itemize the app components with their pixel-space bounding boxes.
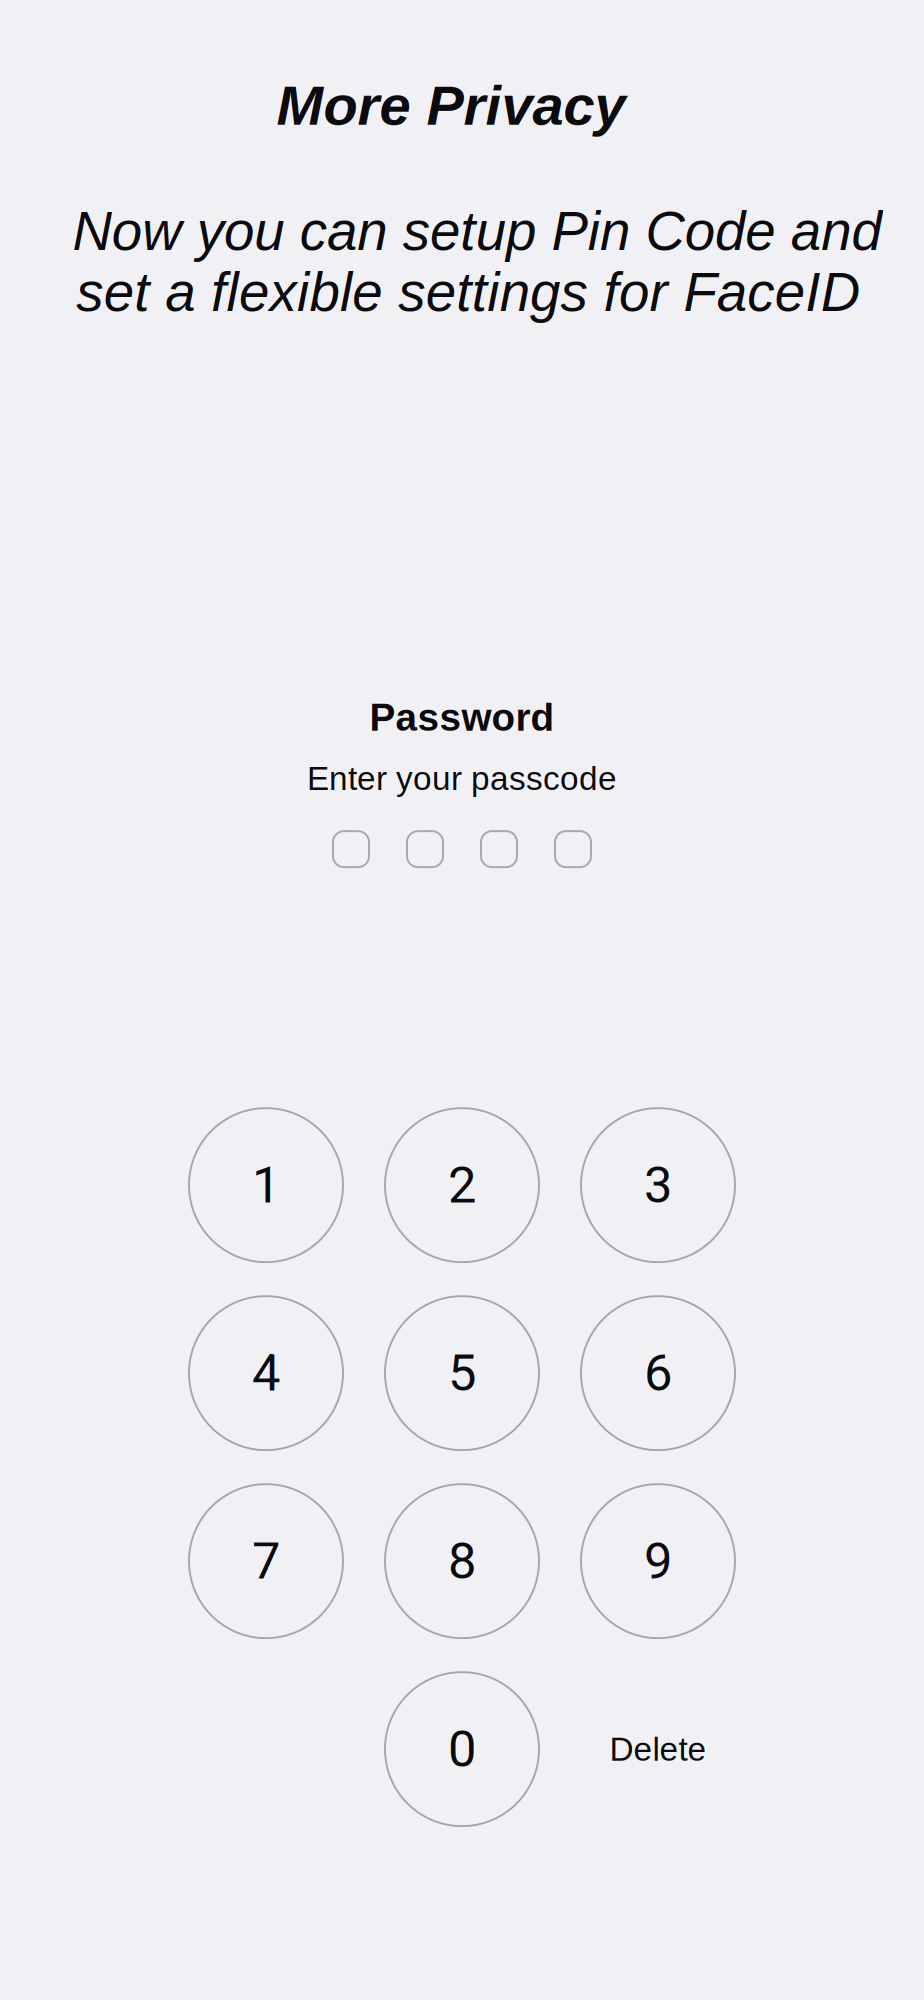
staticText: Enter your passcode	[307, 760, 617, 797]
button[interactable]: 7	[189, 1484, 343, 1638]
button[interactable]: 0	[385, 1672, 539, 1826]
staticText: 4	[252, 1343, 280, 1403]
staticText: 0	[448, 1719, 476, 1779]
staticText: More Privacy	[276, 74, 625, 137]
button[interactable]: 1	[189, 1108, 343, 1262]
staticText: 8	[448, 1531, 476, 1591]
button[interactable]: 9	[581, 1484, 735, 1638]
button[interactable]: 5	[385, 1296, 539, 1450]
staticText: 3	[644, 1155, 672, 1215]
staticText: 2	[448, 1155, 476, 1215]
staticText: Delete	[609, 1730, 706, 1768]
button[interactable]: 4	[189, 1296, 343, 1450]
staticText: 5	[448, 1343, 476, 1403]
staticText: 6	[644, 1343, 672, 1403]
staticText: Now you can setup Pin Code and	[73, 201, 881, 262]
staticText: 1	[252, 1155, 280, 1215]
button[interactable]: 3	[581, 1108, 735, 1262]
button[interactable]: 6	[581, 1296, 735, 1450]
button[interactable]: Delete	[581, 1672, 735, 1826]
button[interactable]: 8	[385, 1484, 539, 1638]
staticText: 7	[252, 1531, 280, 1591]
staticText: 9	[644, 1531, 672, 1591]
button[interactable]: 2	[385, 1108, 539, 1262]
staticText: set a flexible settings for FaceID	[76, 262, 860, 323]
staticText: Password	[369, 696, 554, 739]
